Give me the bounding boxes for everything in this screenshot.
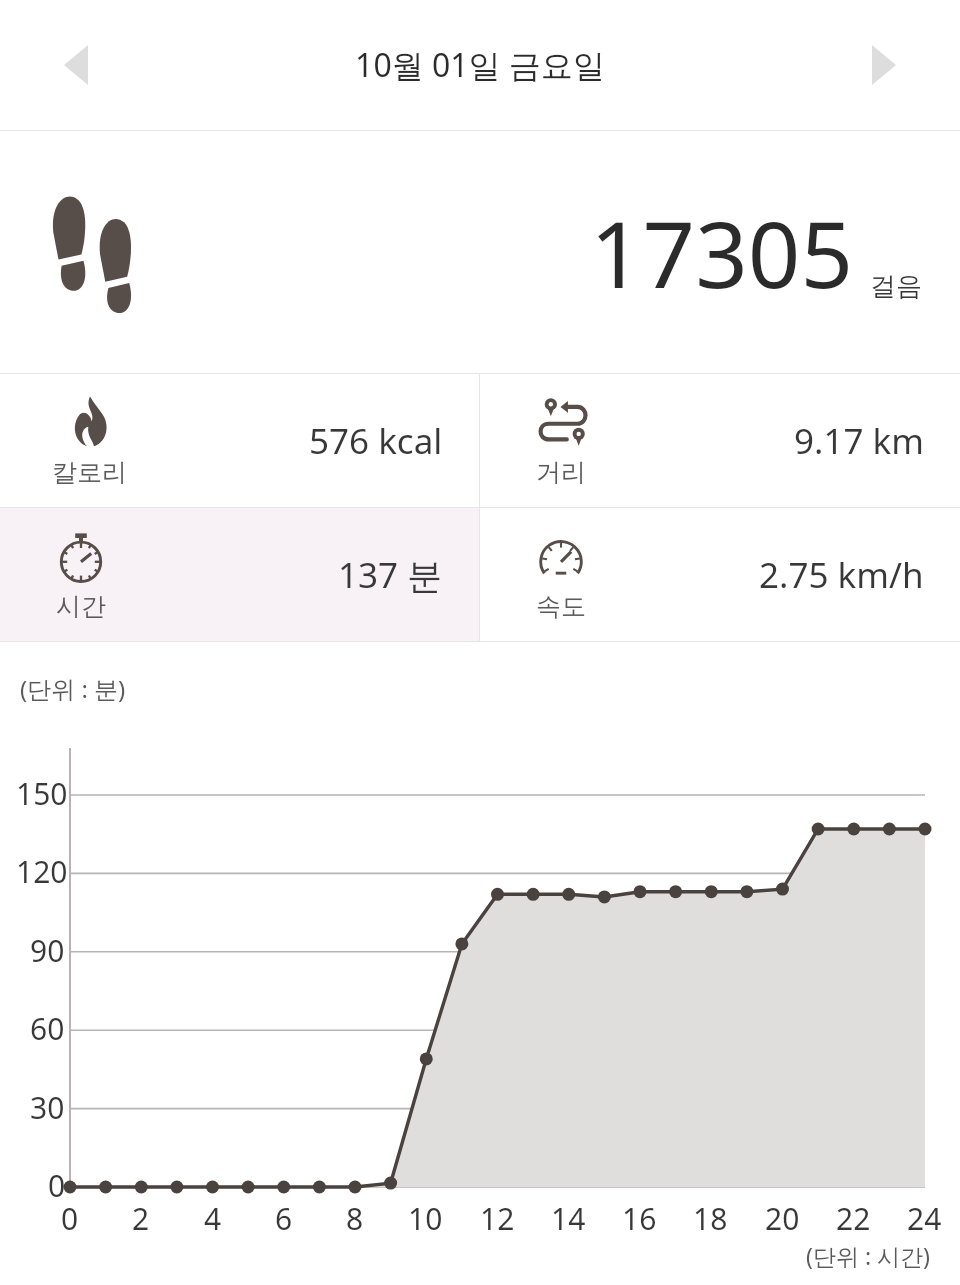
staticText: 6: [275, 1198, 293, 1239]
staticText: 9.17 km: [794, 417, 924, 465]
button[interactable]: 거리: [480, 374, 960, 507]
staticText: 10월 01일 금요일: [355, 43, 605, 87]
staticText: 속도: [536, 591, 586, 622]
staticText: 17305: [590, 190, 854, 315]
staticText: (단위 : 시간): [806, 1240, 930, 1271]
staticText: (단위 : 분): [20, 672, 126, 705]
staticText: 걸음: [870, 270, 922, 303]
staticText: 24: [907, 1198, 942, 1239]
button[interactable]: 칼로리: [0, 374, 479, 507]
staticText: 576 kcal: [309, 417, 443, 465]
staticText: 30: [30, 1087, 65, 1128]
staticText: 12: [480, 1198, 515, 1239]
staticText: 8: [346, 1198, 364, 1239]
staticText: 18: [693, 1198, 728, 1239]
staticText: 16: [622, 1198, 657, 1239]
staticText: 120: [16, 851, 68, 892]
staticText: 10: [408, 1198, 443, 1239]
button[interactable]: 속도: [480, 508, 960, 641]
staticText: 4: [204, 1198, 222, 1239]
staticText: 22: [836, 1198, 871, 1239]
button[interactable]: Previous day: [46, 32, 106, 98]
staticText: 2: [132, 1198, 150, 1239]
staticText: 0: [61, 1198, 79, 1239]
staticText: 시간: [56, 591, 106, 622]
staticText: 150: [16, 773, 68, 814]
staticText: 칼로리: [52, 457, 127, 488]
staticText: 거리: [536, 457, 586, 488]
button[interactable]: 시간: [0, 508, 479, 641]
staticText: 137 분: [338, 551, 443, 599]
button[interactable]: Next day: [854, 32, 914, 98]
staticText: 0: [48, 1165, 66, 1206]
button[interactable]: 17305: [0, 131, 960, 373]
staticText: 90: [30, 930, 65, 971]
staticText: 2.75 km/h: [759, 551, 924, 599]
staticText: 14: [551, 1198, 586, 1239]
staticText: 60: [30, 1008, 65, 1049]
staticText: 20: [765, 1198, 800, 1239]
